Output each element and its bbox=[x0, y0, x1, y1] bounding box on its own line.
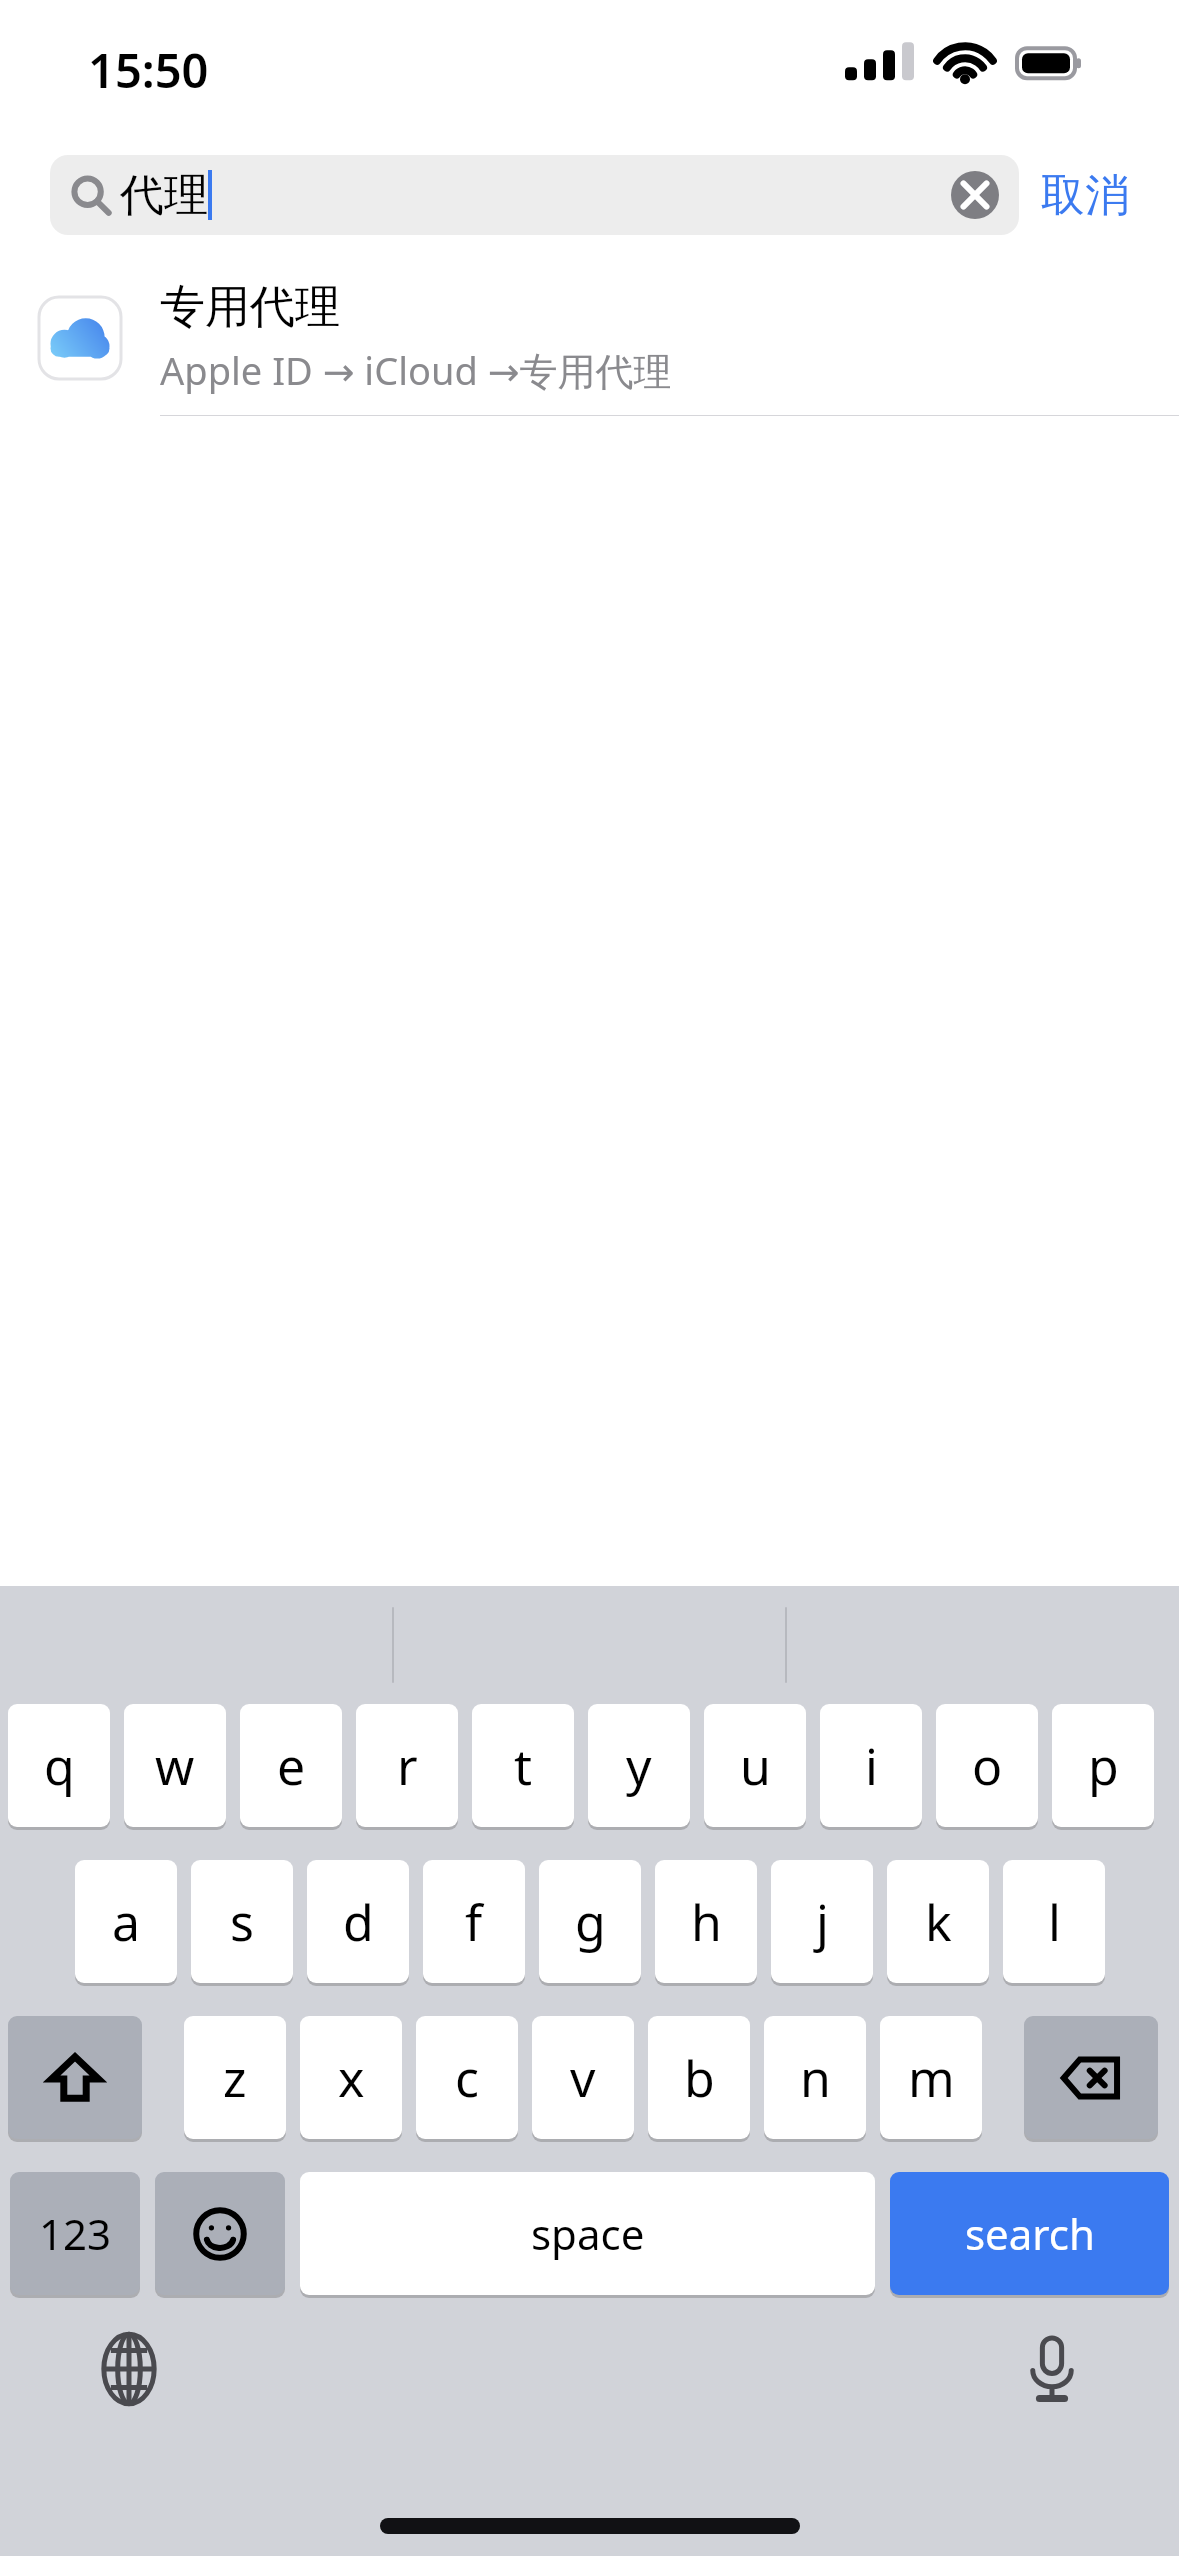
button[interactable]: f bbox=[423, 1860, 525, 1986]
button[interactable]: x bbox=[300, 2016, 402, 2142]
staticText: j bbox=[816, 1888, 829, 1956]
staticText: f bbox=[465, 1888, 483, 1956]
button[interactable]: j bbox=[771, 1860, 873, 1986]
staticText: b bbox=[684, 2044, 715, 2112]
button[interactable]: Backspace bbox=[1024, 2016, 1158, 2142]
button[interactable]: Dictation bbox=[1013, 2330, 1091, 2408]
button[interactable]: l bbox=[1003, 1860, 1105, 1986]
button[interactable]: Clear text bbox=[951, 171, 999, 219]
staticText: search bbox=[965, 2205, 1095, 2262]
staticText: Apple ID → iCloud →专用代理 bbox=[160, 344, 672, 396]
staticText: o bbox=[972, 1732, 1003, 1800]
staticText: z bbox=[223, 2044, 247, 2112]
staticText: e bbox=[277, 1732, 306, 1800]
button[interactable]: w bbox=[124, 1704, 226, 1830]
staticText: m bbox=[908, 2044, 955, 2112]
button[interactable]: d bbox=[307, 1860, 409, 1986]
button[interactable]: Shift bbox=[8, 2016, 142, 2142]
button[interactable]: e bbox=[240, 1704, 342, 1830]
button[interactable]: t bbox=[472, 1704, 574, 1830]
button[interactable]: 代理 bbox=[50, 155, 1019, 235]
button[interactable]: s bbox=[191, 1860, 293, 1986]
button[interactable]: i bbox=[820, 1704, 922, 1830]
staticText: r bbox=[397, 1732, 418, 1800]
button[interactable]: 123 bbox=[10, 2172, 140, 2298]
staticText: 123 bbox=[39, 2205, 112, 2262]
button[interactable]: b bbox=[648, 2016, 750, 2142]
staticText: 15:50 bbox=[88, 38, 209, 102]
staticText: 专用代理 bbox=[160, 279, 340, 336]
button[interactable]: k bbox=[887, 1860, 989, 1986]
staticText: u bbox=[740, 1732, 771, 1800]
button[interactable]: c bbox=[416, 2016, 518, 2142]
staticText: space bbox=[531, 2205, 645, 2262]
staticText: c bbox=[455, 2044, 479, 2112]
staticText: g bbox=[575, 1888, 606, 1956]
staticText: v bbox=[570, 2044, 596, 2112]
button[interactable]: q bbox=[8, 1704, 110, 1830]
button[interactable]: space bbox=[300, 2172, 875, 2298]
button[interactable]: n bbox=[764, 2016, 866, 2142]
button[interactable]: 取消 bbox=[1019, 155, 1129, 235]
button[interactable]: h bbox=[655, 1860, 757, 1986]
button[interactable]: o bbox=[936, 1704, 1038, 1830]
staticText: i bbox=[865, 1732, 878, 1800]
button[interactable]: g bbox=[539, 1860, 641, 1986]
staticText: 代理 bbox=[120, 168, 208, 223]
staticText: a bbox=[112, 1888, 141, 1956]
button[interactable]: search bbox=[890, 2172, 1169, 2298]
button[interactable]: y bbox=[588, 1704, 690, 1830]
button[interactable]: r bbox=[356, 1704, 458, 1830]
staticText: h bbox=[691, 1888, 722, 1956]
button[interactable]: z bbox=[184, 2016, 286, 2142]
staticText: x bbox=[338, 2044, 365, 2112]
staticText: t bbox=[514, 1732, 533, 1800]
button[interactable]: p bbox=[1052, 1704, 1154, 1830]
button[interactable]: m bbox=[880, 2016, 982, 2142]
staticText: n bbox=[800, 2044, 831, 2112]
staticText: p bbox=[1088, 1732, 1119, 1800]
button[interactable]: a bbox=[75, 1860, 177, 1986]
button[interactable]: 专用代理 bbox=[0, 260, 1179, 415]
button[interactable]: v bbox=[532, 2016, 634, 2142]
staticText: 取消 bbox=[1041, 168, 1129, 223]
staticText: d bbox=[343, 1888, 374, 1956]
button[interactable]: Emoji bbox=[155, 2172, 285, 2298]
staticText: w bbox=[155, 1732, 195, 1800]
staticText: l bbox=[1048, 1888, 1061, 1956]
staticText: y bbox=[626, 1732, 652, 1800]
button[interactable]: Change keyboard language bbox=[90, 2330, 168, 2408]
staticText: k bbox=[925, 1888, 952, 1956]
staticText: s bbox=[230, 1888, 254, 1956]
staticText: q bbox=[44, 1732, 75, 1800]
button[interactable]: u bbox=[704, 1704, 806, 1830]
